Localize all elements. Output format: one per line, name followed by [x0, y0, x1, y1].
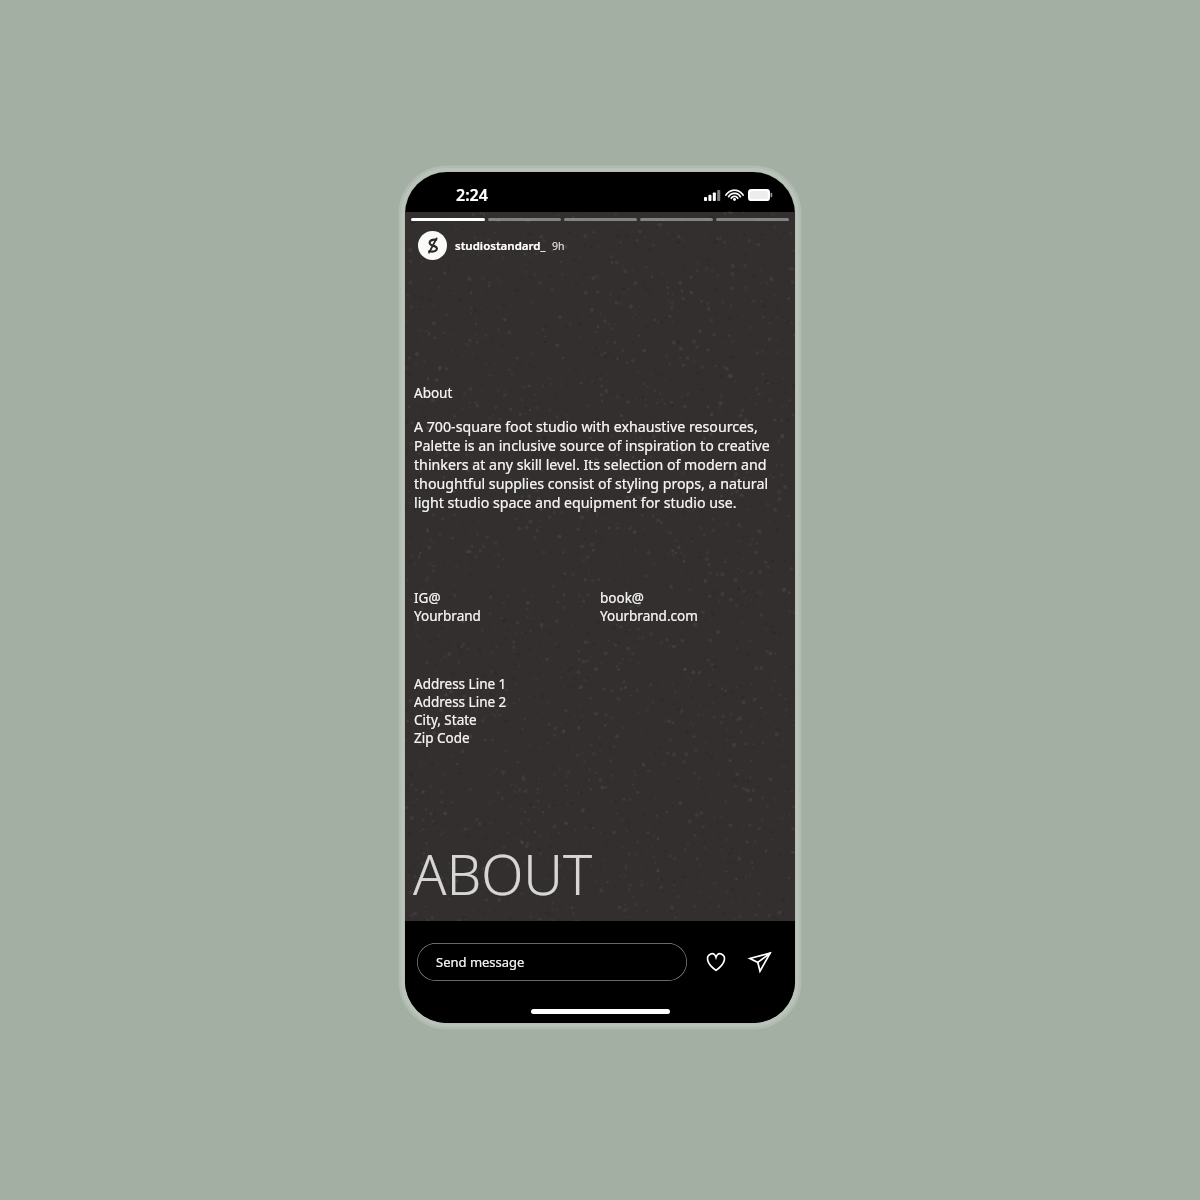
staticText: About — [414, 384, 453, 402]
button[interactable]: Send — [741, 943, 779, 981]
staticText: ABOUT — [413, 836, 593, 911]
staticText: 9h — [552, 239, 565, 253]
button[interactable]: studiostandard_ — [418, 231, 782, 260]
staticText: Send message — [436, 953, 525, 971]
staticText: studiostandard_ — [455, 238, 546, 254]
staticText: book@ Yourbrand.com — [600, 589, 698, 625]
staticText: IG@ Yourbrand — [414, 589, 481, 625]
button[interactable]: book@ Yourbrand.com — [600, 589, 786, 625]
button[interactable]: Send message — [417, 943, 687, 981]
button[interactable]: IG@ Yourbrand — [414, 589, 600, 625]
staticText: A 700-square foot studio with exhaustive… — [414, 417, 786, 512]
button[interactable]: Like — [697, 943, 735, 981]
staticText: 2:24 — [456, 184, 488, 206]
staticText: Address Line 1 Address Line 2 City, Stat… — [414, 675, 507, 747]
